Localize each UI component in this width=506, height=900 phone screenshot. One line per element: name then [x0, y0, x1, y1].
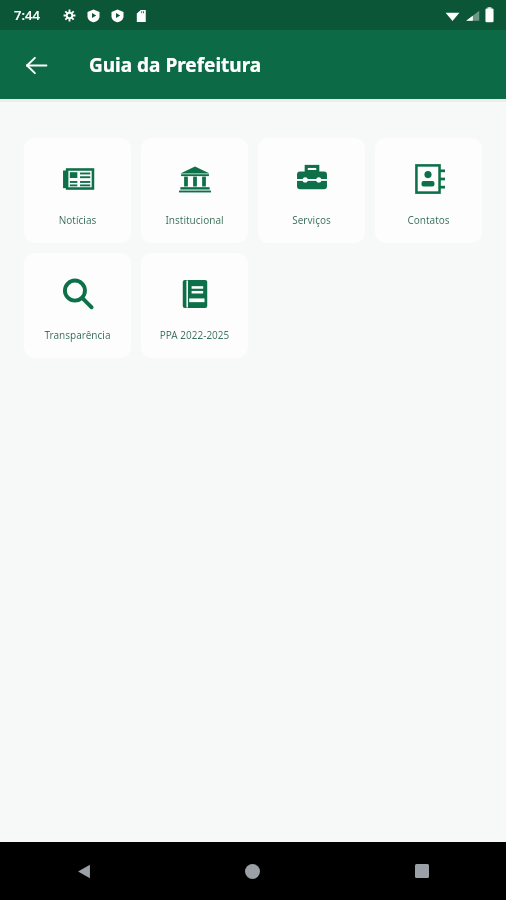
button[interactable]: Serviços — [258, 138, 365, 243]
button[interactable]: Notícias — [24, 138, 131, 243]
staticText: Transparência — [27, 328, 128, 342]
staticText: Contatos — [378, 213, 479, 227]
button[interactable]: Transparência — [24, 253, 131, 358]
staticText: PPA 2022-2025 — [144, 328, 245, 342]
staticText: Guia da Prefeitura — [89, 52, 262, 78]
staticText: Notícias — [27, 213, 128, 227]
button[interactable]: PPA 2022-2025 — [141, 253, 248, 358]
staticText: Serviços — [261, 213, 362, 227]
button[interactable]: Institucional — [141, 138, 248, 243]
button[interactable]: Recents — [337, 842, 506, 900]
staticText: Institucional — [144, 213, 245, 227]
button[interactable]: Back — [0, 842, 168, 900]
staticText: 7:44 — [14, 6, 40, 24]
button[interactable]: Contatos — [375, 138, 482, 243]
button[interactable]: Home — [168, 842, 337, 900]
button[interactable]: Back — [12, 41, 60, 89]
